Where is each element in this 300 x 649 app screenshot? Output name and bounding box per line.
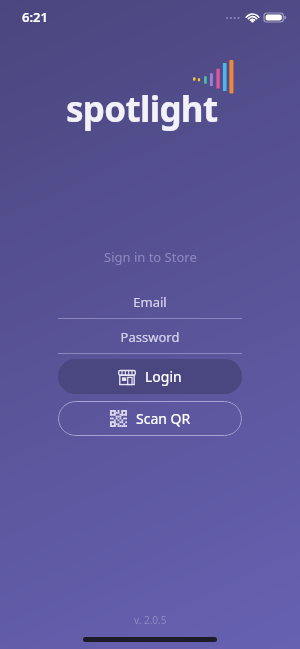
staticText: Email: [58, 293, 242, 311]
staticText: Password: [58, 328, 242, 346]
staticText: spotlight: [66, 85, 218, 133]
button[interactable]: Store: [58, 359, 242, 394]
staticText: v. 2.0.5: [134, 613, 167, 627]
button[interactable]: Email: [58, 293, 242, 319]
staticText: 6:21: [22, 8, 48, 26]
button[interactable]: Scan QR code: [58, 401, 242, 436]
staticText: Sign in to Store: [104, 248, 197, 266]
staticText: Scan QR: [136, 409, 191, 428]
button[interactable]: Password: [58, 328, 242, 354]
other: Scan QR code: [110, 410, 127, 427]
button[interactable]: Sign in to Store: [98, 246, 203, 268]
staticText: Login: [145, 367, 182, 386]
other: Store: [118, 368, 136, 386]
